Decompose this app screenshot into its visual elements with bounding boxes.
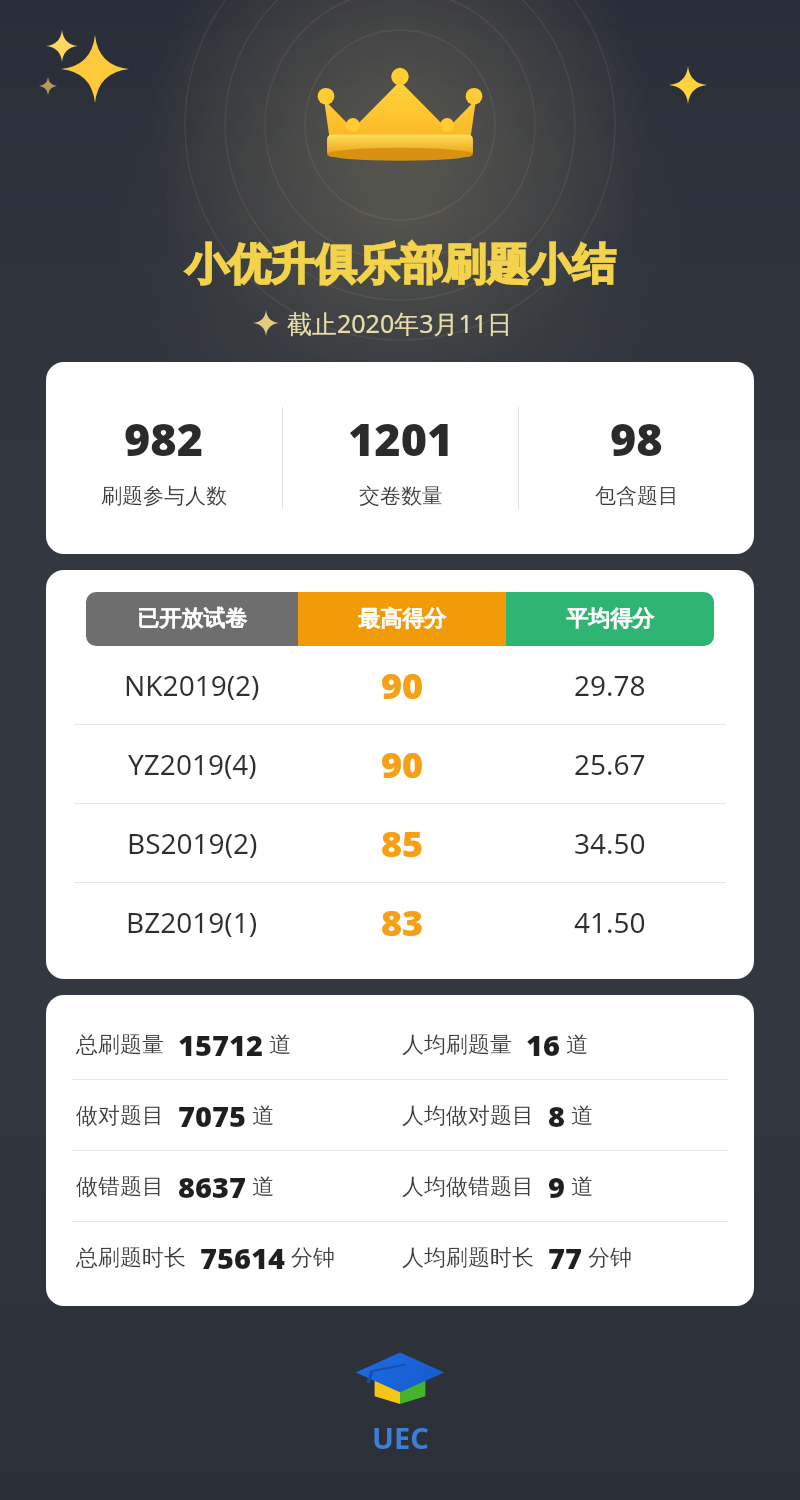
button[interactable]: 总刷题量 xyxy=(46,995,754,1306)
staticText: 90 xyxy=(381,740,424,789)
staticText: 982 xyxy=(124,408,204,469)
staticText: 包含题目 xyxy=(595,483,679,509)
staticText: 道 xyxy=(566,1031,588,1059)
staticText: 98 xyxy=(610,408,663,469)
staticText: 29.78 xyxy=(574,666,646,704)
button[interactable]: 做错题目 xyxy=(46,1151,754,1222)
staticText: 75614 xyxy=(200,1238,285,1277)
button[interactable]: YZ2019(4) xyxy=(46,725,754,804)
staticText: 做对题目 xyxy=(76,1102,164,1130)
staticText: 截止2020年3月11日 xyxy=(287,306,513,340)
staticText: 平均得分 xyxy=(566,605,654,633)
staticText: 总刷题量 xyxy=(76,1031,164,1059)
staticText: 34.50 xyxy=(574,824,646,862)
staticText: 做错题目 xyxy=(76,1173,164,1201)
staticText: BZ2019(1) xyxy=(126,903,258,941)
staticText: 小优升俱乐部刷题小结 xyxy=(185,238,615,292)
staticText: 8637 xyxy=(178,1167,246,1206)
button[interactable]: 做对题目 xyxy=(46,1080,754,1151)
staticText: 25.67 xyxy=(574,745,646,783)
staticText: YZ2019(4) xyxy=(128,745,257,783)
staticText: 1201 xyxy=(348,408,454,469)
staticText: 刷题参与人数 xyxy=(101,483,227,509)
staticText: 道 xyxy=(571,1173,593,1201)
staticText: 人均刷题时长 xyxy=(402,1244,534,1272)
staticText: 8 xyxy=(548,1096,565,1135)
staticText: 最高得分 xyxy=(358,605,446,633)
button[interactable]: UEC logo xyxy=(345,1338,455,1465)
staticText: NK2019(2) xyxy=(124,666,260,704)
staticText: 9 xyxy=(548,1167,565,1206)
staticText: 85 xyxy=(381,819,424,868)
button[interactable]: BS2019(2) xyxy=(46,804,754,883)
staticText: 15712 xyxy=(178,1025,263,1064)
staticText: 83 xyxy=(381,898,424,947)
button[interactable]: 平均得分 xyxy=(506,592,714,646)
staticText: UEC xyxy=(372,1418,429,1457)
staticText: 道 xyxy=(571,1102,593,1130)
staticText: 总刷题时长 xyxy=(76,1244,186,1272)
button[interactable]: BZ2019(1) xyxy=(46,883,754,961)
button[interactable]: 已开放试卷 xyxy=(86,592,298,646)
button[interactable]: NK2019(2) xyxy=(46,646,754,725)
staticText: BS2019(2) xyxy=(127,824,258,862)
button[interactable]: 已开放试卷 xyxy=(46,570,754,979)
staticText: 16 xyxy=(526,1025,560,1064)
staticText: 人均做对题目 xyxy=(402,1102,534,1130)
staticText: 77 xyxy=(548,1238,582,1277)
staticText: 分钟 xyxy=(291,1244,335,1272)
button[interactable]: 总刷题量 xyxy=(46,1009,754,1080)
staticText: 7075 xyxy=(178,1096,246,1135)
staticText: 道 xyxy=(269,1031,291,1059)
staticText: 已开放试卷 xyxy=(137,605,247,633)
button[interactable]: 总刷题时长 xyxy=(46,1222,754,1292)
staticText: 分钟 xyxy=(588,1244,632,1272)
staticText: 道 xyxy=(252,1173,274,1201)
staticText: 人均做错题目 xyxy=(402,1173,534,1201)
staticText: 道 xyxy=(252,1102,274,1130)
staticText: 90 xyxy=(381,661,424,710)
staticText: 人均刷题量 xyxy=(402,1031,512,1059)
button[interactable]: 982 xyxy=(46,362,754,554)
button[interactable]: 最高得分 xyxy=(298,592,506,646)
staticText: 41.50 xyxy=(574,903,646,941)
staticText: 交卷数量 xyxy=(359,483,443,509)
